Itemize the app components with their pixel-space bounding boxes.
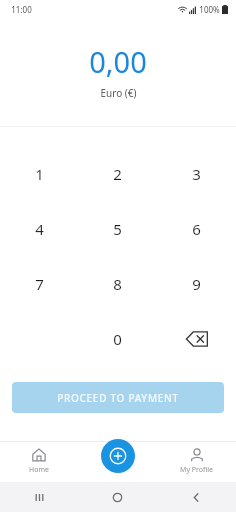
staticText: Home: [29, 465, 49, 475]
staticText: 2: [113, 164, 122, 184]
staticText: 11:00: [11, 4, 32, 15]
button[interactable]: 8: [78, 256, 157, 311]
button[interactable]: 6: [157, 201, 236, 256]
staticText: 1: [35, 164, 44, 184]
staticText: 100%: [199, 4, 220, 15]
staticText: 8: [113, 274, 122, 294]
staticText: 4: [35, 219, 44, 239]
button[interactable]: 4: [0, 201, 78, 256]
button[interactable]: Back: [157, 482, 236, 512]
button[interactable]: Add payment: [101, 439, 135, 473]
button[interactable]: Recents: [0, 482, 78, 512]
button[interactable]: Backspace: [157, 311, 236, 366]
staticText: My Profile: [180, 465, 213, 475]
button[interactable]: PROCEED TO PAYMENT: [12, 382, 224, 413]
button[interactable]: 5: [78, 201, 157, 256]
staticText: 5: [113, 219, 122, 239]
button[interactable]: Home: [78, 482, 157, 512]
staticText: 0: [113, 329, 122, 349]
button[interactable]: 2: [78, 146, 157, 201]
button[interactable]: 9: [157, 256, 236, 311]
button[interactable]: 7: [0, 256, 78, 311]
staticText: 6: [192, 219, 201, 239]
button[interactable]: My Profile: [157, 441, 236, 482]
staticText: PROCEED TO PAYMENT: [57, 391, 179, 405]
staticText: 0,00: [89, 42, 147, 81]
button[interactable]: 1: [0, 146, 78, 201]
staticText: 3: [192, 164, 201, 184]
button[interactable]: 0: [78, 311, 157, 366]
staticText: 9: [192, 274, 201, 294]
staticText: 7: [35, 274, 44, 294]
staticText: Euro (€): [100, 86, 137, 100]
button[interactable]: 3: [157, 146, 236, 201]
button[interactable]: Home: [0, 441, 78, 482]
